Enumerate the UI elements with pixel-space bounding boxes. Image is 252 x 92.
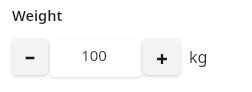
button[interactable]: Increase weight (143, 39, 180, 75)
staticText: 100 (81, 45, 107, 65)
staticText: kg (189, 46, 208, 68)
staticText: Weight (12, 5, 63, 25)
button[interactable]: Decrease weight (12, 39, 48, 75)
button[interactable]: 100 (50, 39, 141, 77)
